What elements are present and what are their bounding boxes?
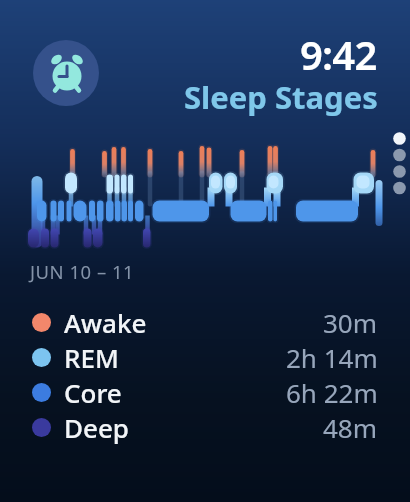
- button[interactable]: REM: [32, 340, 378, 375]
- staticText: 6h 22m: [286, 375, 378, 410]
- staticText: Awake: [64, 305, 147, 340]
- staticText: Sleep Stages: [184, 76, 378, 118]
- staticText: JUN 10 – 11: [30, 259, 135, 284]
- staticText: Deep: [64, 410, 129, 445]
- staticText: REM: [64, 340, 119, 375]
- staticText: Core: [64, 375, 122, 410]
- button[interactable]: Core: [32, 375, 378, 410]
- button[interactable]: Awake: [32, 305, 378, 340]
- button[interactable]: Deep: [32, 410, 378, 445]
- button[interactable]: [33, 40, 99, 106]
- staticText: 9:42: [300, 27, 377, 81]
- staticText: 48m: [323, 410, 378, 445]
- staticText: 30m: [323, 305, 378, 340]
- staticText: 2h 14m: [286, 340, 378, 375]
